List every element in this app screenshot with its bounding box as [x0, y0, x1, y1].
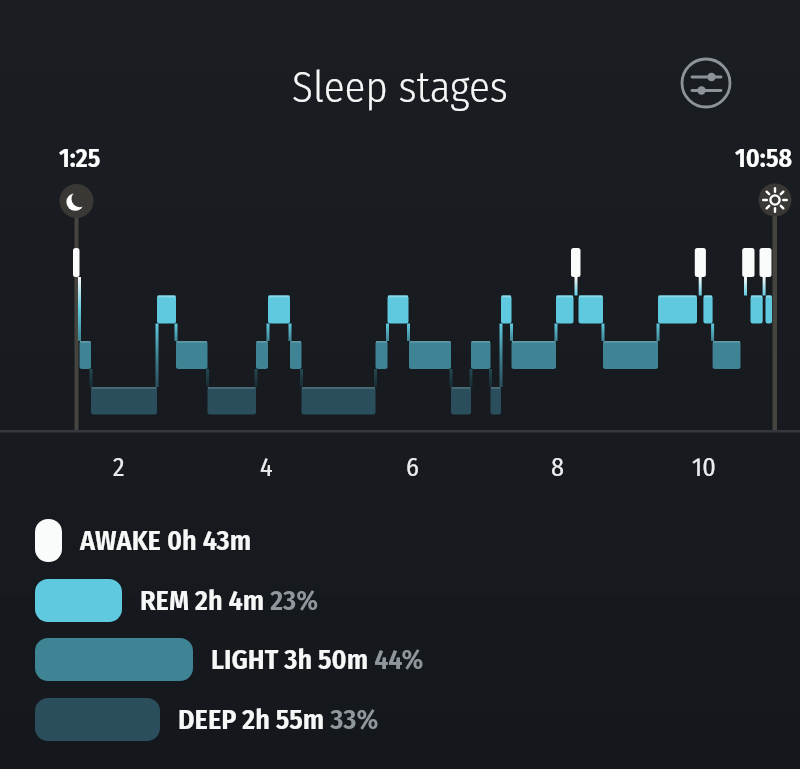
staticText: DEEP 2h 55m 33% — [178, 703, 379, 737]
staticText: AWAKE 0h 43m — [80, 524, 252, 558]
staticText: LIGHT 3h 50m 44% — [211, 643, 424, 677]
staticText: 2 — [113, 452, 125, 483]
button[interactable]: REM 2h 4m 23% — [35, 579, 318, 622]
staticText: Sleep stages — [292, 62, 508, 114]
staticText: 4 — [260, 452, 273, 483]
button[interactable]: AWAKE 0h 43m — [35, 519, 252, 562]
staticText: 8 — [551, 452, 565, 483]
button[interactable]: DEEP 2h 55m 33% — [35, 698, 379, 741]
staticText: 10:58 — [735, 143, 793, 174]
staticText: 10 — [692, 452, 716, 483]
staticText: 1:25 — [59, 143, 101, 174]
staticText: 6 — [406, 452, 419, 483]
button[interactable]: LIGHT 3h 50m 44% — [35, 638, 424, 681]
staticText: REM 2h 4m 23% — [140, 584, 318, 618]
button[interactable] — [678, 55, 734, 111]
